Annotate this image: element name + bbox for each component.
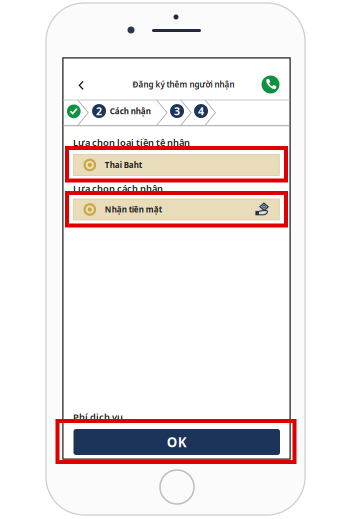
staticText: Thai Baht bbox=[105, 160, 142, 170]
staticText: Cách nhận bbox=[110, 106, 151, 116]
button[interactable]: Nhận tiền mặt bbox=[73, 199, 279, 220]
staticText: 2 bbox=[96, 104, 102, 118]
staticText: 3 bbox=[174, 104, 180, 118]
button[interactable]: Call support bbox=[63, 58, 289, 458]
staticText: Phí dịch vụ bbox=[73, 411, 123, 423]
staticText: 4 bbox=[198, 104, 204, 118]
button[interactable]: Back bbox=[63, 58, 289, 458]
staticText: Đăng ký thêm người nhận bbox=[132, 79, 234, 90]
button[interactable]: Thai Baht bbox=[73, 154, 279, 175]
button[interactable]: OK bbox=[63, 58, 289, 458]
staticText: OK bbox=[167, 433, 187, 451]
staticText: Lựa chọn loại tiền tệ nhận bbox=[73, 136, 190, 149]
staticText: Nhận tiền mặt bbox=[105, 204, 162, 215]
staticText: Lựa chọn cách nhận bbox=[73, 182, 163, 195]
